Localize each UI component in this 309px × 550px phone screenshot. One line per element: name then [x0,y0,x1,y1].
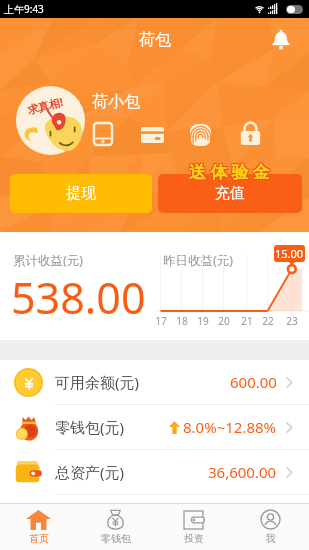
staticText: 送体验金 [188,163,273,184]
staticText: 36,600.00 [208,462,277,482]
staticText: 荷包 [139,30,171,50]
button[interactable]: 待收金额(元) [0,495,309,539]
button[interactable]: 投资 [155,504,232,550]
button[interactable]: 零钱包 [77,504,154,550]
button[interactable]: 可用余额(元) [0,360,309,404]
staticText: 可用余额(元) [55,372,140,392]
staticText: 累计收益(元) [13,252,84,269]
staticText: 送体验金 [188,161,273,182]
staticText: 求真相! [26,94,65,117]
staticText: 21 [238,314,256,328]
staticText: 送体验金 [190,162,275,183]
staticText: 送体验金 [190,163,275,184]
button[interactable]: 总资产(元) [0,450,309,494]
button[interactable]: 提现 [10,174,152,213]
staticText: 22 [259,314,277,328]
staticText: 送体验金 [190,161,275,182]
staticText: 零钱包 [101,532,131,545]
staticText: 提现 [66,184,96,203]
staticText: 总资产(元) [55,462,125,482]
staticText: 荷小包 [92,92,140,112]
staticText: 538.00 [11,268,146,327]
staticText: 18 [173,314,191,328]
staticText: 600.00 [230,372,277,392]
button[interactable]: 充值 [158,174,302,213]
staticText: 昨日收益(元) [163,252,234,269]
staticText: 我 [266,532,276,545]
staticText: 零钱包(元) [55,417,125,437]
staticText: 待收金额(元) [55,507,140,527]
staticText: 送体验金 [189,162,274,183]
staticText: 充值 [215,184,245,203]
button[interactable]: 零钱包(元) [0,405,309,449]
staticText: 20 [215,314,233,328]
staticText: 23 [283,314,301,328]
staticText: 送体验金 [188,162,273,183]
button[interactable]: Notifications [269,28,293,52]
staticText: 首页 [29,532,49,545]
staticText: 5,000.00 [217,507,277,527]
button[interactable]: 首页 [0,504,77,550]
staticText: 送体验金 [189,161,274,182]
staticText: 19 [194,314,212,328]
staticText: 15.00 [275,246,304,261]
staticText: 17 [152,314,170,328]
staticText: 上午9:43 [4,2,44,16]
staticText: 送体验金 [189,163,274,184]
staticText: 8.0%~12.88% [183,417,277,437]
staticText: 投资 [184,532,204,545]
button[interactable]: 我 [232,504,309,550]
